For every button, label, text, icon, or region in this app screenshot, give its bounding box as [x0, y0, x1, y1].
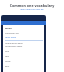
staticText: with help from TED-Ed	[0, 8, 64, 11]
staticText: Four	[5, 65, 10, 68]
staticText: Learn more	[5, 36, 16, 39]
staticText: Two	[5, 55, 9, 58]
staticText: One	[5, 50, 9, 53]
staticText: Menu	[5, 26, 12, 29]
staticText: consectetur adipis	[5, 45, 23, 48]
staticText: Common one vocabulary	[0, 3, 64, 8]
staticText: Three	[5, 60, 11, 63]
staticText: Lorem ipsum dolor	[5, 42, 23, 45]
staticText: Vocabulary list	[5, 32, 19, 35]
